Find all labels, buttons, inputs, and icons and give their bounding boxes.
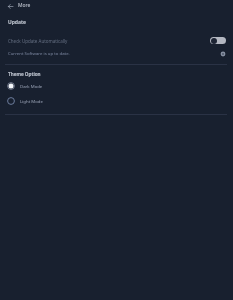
staticText: Current Software is up to date. (8, 50, 70, 56)
button[interactable]: Dark Mode (0, 79, 233, 93)
button[interactable]: Light Mode (0, 94, 233, 108)
button[interactable]: Check for updates (220, 51, 226, 57)
staticText: Light Mode (20, 98, 43, 104)
staticText: Check Update Automatically (8, 38, 68, 44)
staticText: Dark Mode (20, 83, 43, 89)
button[interactable]: Check Update Automatically (0, 34, 233, 47)
button[interactable]: Check Update Automatically toggle (210, 37, 226, 44)
staticText: More (18, 2, 31, 9)
button[interactable]: Current Software is up to date. (0, 46, 233, 59)
button[interactable]: Back (5, 1, 15, 11)
staticText: Update (8, 19, 26, 26)
staticText: Theme Option (8, 71, 41, 77)
button[interactable]: More (15, 0, 35, 11)
